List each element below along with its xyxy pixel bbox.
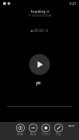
button[interactable]: Play <box>29 54 50 75</box>
staticText: in progress now <box>28 14 51 17</box>
button[interactable]: Mute <box>27 123 40 136</box>
button[interactable]: Flip <box>52 123 65 136</box>
button[interactable]: Share <box>14 123 27 136</box>
button[interactable]: Video <box>39 123 52 136</box>
staticText: Recording is <box>30 10 48 14</box>
staticText: More <box>68 124 75 128</box>
staticText: 00:00:13 <box>34 29 48 33</box>
button[interactable]: Marker <box>36 82 41 86</box>
button[interactable]: More <box>67 124 76 128</box>
staticText: Share <box>17 132 24 136</box>
staticText: Video <box>41 132 50 136</box>
staticText: Mute <box>30 132 37 136</box>
staticText: Flip <box>56 132 61 136</box>
staticText: 9:41 <box>69 1 76 6</box>
